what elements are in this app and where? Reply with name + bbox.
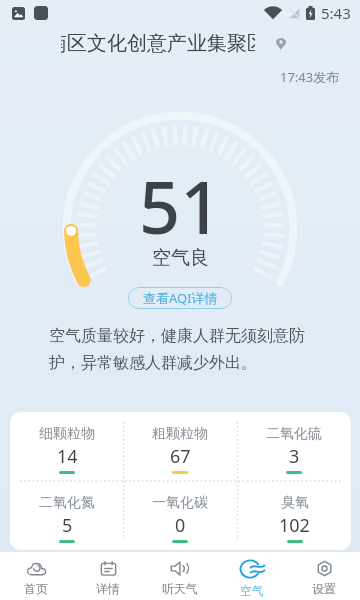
button[interactable]: 空气 bbox=[216, 552, 288, 600]
button[interactable]: 详情 bbox=[72, 552, 144, 600]
button[interactable]: 臭氧 bbox=[237, 481, 351, 550]
staticText: 空气质量较好，健康人群无须刻意防护，异常敏感人群减少外出。 bbox=[49, 326, 311, 373]
staticText: 67 bbox=[170, 444, 191, 469]
staticText: 详情 bbox=[96, 581, 120, 596]
staticText: 听天气 bbox=[162, 581, 198, 596]
staticText: 一氧化碳 bbox=[152, 494, 208, 512]
staticText: 二氧化氮 bbox=[39, 494, 95, 512]
staticText: 查看AQI详情 bbox=[143, 289, 218, 307]
button[interactable]: 一氧化碳 bbox=[123, 481, 237, 550]
staticText: 南区文化创意产业集聚区海曙 bbox=[61, 31, 255, 55]
staticText: 51 bbox=[139, 157, 222, 255]
button[interactable]: 二氧化硫 bbox=[237, 412, 351, 481]
other: Location bbox=[276, 37, 286, 50]
staticText: 二氧化硫 bbox=[266, 425, 322, 443]
staticText: 设置 bbox=[312, 581, 336, 596]
staticText: 细颗粒物 bbox=[39, 425, 95, 443]
button[interactable]: 细颗粒物 bbox=[10, 412, 123, 481]
staticText: 5 bbox=[62, 513, 73, 538]
staticText: 空气良 bbox=[152, 246, 209, 270]
button[interactable]: 粗颗粒物 bbox=[123, 412, 237, 481]
staticText: 17:43发布 bbox=[280, 68, 340, 86]
button[interactable]: 查看AQI详情 bbox=[128, 287, 232, 309]
button[interactable]: 二氧化氮 bbox=[10, 481, 123, 550]
button[interactable]: 设置 bbox=[288, 552, 360, 600]
staticText: 5:43 bbox=[321, 3, 351, 23]
staticText: 臭氧 bbox=[281, 494, 309, 512]
staticText: 102 bbox=[279, 513, 310, 538]
button[interactable]: 听天气 bbox=[144, 552, 216, 600]
staticText: 粗颗粒物 bbox=[152, 425, 208, 443]
staticText: 空气 bbox=[240, 583, 264, 598]
button[interactable]: 首页 bbox=[0, 552, 72, 600]
staticText: 14 bbox=[57, 444, 78, 469]
staticText: 3 bbox=[289, 444, 300, 469]
staticText: 0 bbox=[175, 513, 186, 538]
staticText: 首页 bbox=[24, 581, 48, 596]
